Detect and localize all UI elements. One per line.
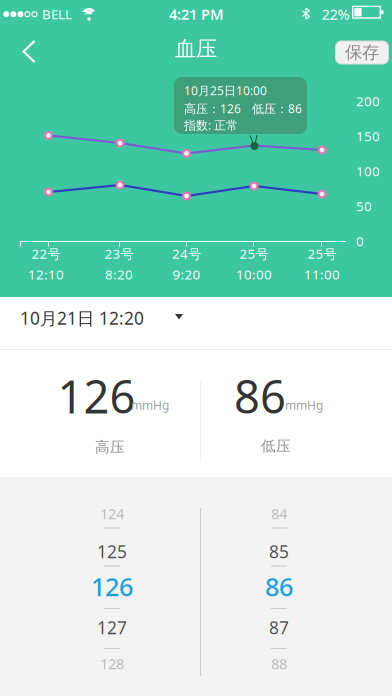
staticText: 9:20 [172, 265, 200, 283]
staticText: 高压 [95, 438, 125, 456]
staticText: 10月25日10:00 [184, 82, 267, 98]
staticText: 低压 [261, 437, 291, 455]
staticText: 50 [356, 197, 372, 215]
staticText: 保存 [345, 42, 379, 63]
staticText: 100 [356, 162, 380, 180]
staticText: mmHg [131, 397, 169, 413]
staticText: mmHg [285, 397, 323, 413]
staticText: 血压 [175, 36, 217, 62]
staticText: 4:21 PM [169, 4, 224, 24]
button[interactable]: Back [7, 31, 48, 73]
staticText: 23号 [104, 245, 133, 262]
staticText: 87 [269, 616, 289, 639]
staticText: 85 [269, 540, 289, 563]
staticText: 10月21日 12:20 [20, 306, 144, 329]
button[interactable]: 10月21日 12:20 [0, 297, 240, 340]
staticText: 150 [356, 127, 380, 145]
staticText: BELL [42, 5, 72, 23]
staticText: 88 [271, 654, 287, 673]
staticText: 124 [100, 504, 124, 523]
staticText: 86 [234, 366, 286, 426]
staticText: 25号 [239, 245, 268, 262]
staticText: 128 [100, 654, 124, 673]
staticText: 8:20 [105, 265, 133, 283]
staticText: 127 [97, 616, 127, 639]
staticText: 84 [271, 504, 287, 523]
staticText: 高压：126 [184, 100, 241, 116]
staticText: 12:10 [28, 265, 64, 283]
staticText: 126 [91, 570, 133, 603]
staticText: 22% [321, 4, 349, 24]
staticText: 11:00 [304, 265, 340, 283]
staticText: 10:00 [236, 265, 272, 283]
staticText: 86 [265, 570, 293, 603]
staticText: 25号 [307, 245, 336, 262]
staticText: 125 [97, 540, 127, 563]
staticText: 22号 [31, 245, 60, 262]
staticText: 200 [356, 92, 380, 110]
staticText: 低压：86 [252, 100, 302, 116]
staticText: 指数: 正常 [184, 117, 238, 133]
button[interactable]: 保存 [335, 41, 388, 64]
staticText: 24号 [172, 245, 201, 262]
staticText: 0 [356, 232, 364, 250]
staticText: 126 [57, 366, 135, 426]
